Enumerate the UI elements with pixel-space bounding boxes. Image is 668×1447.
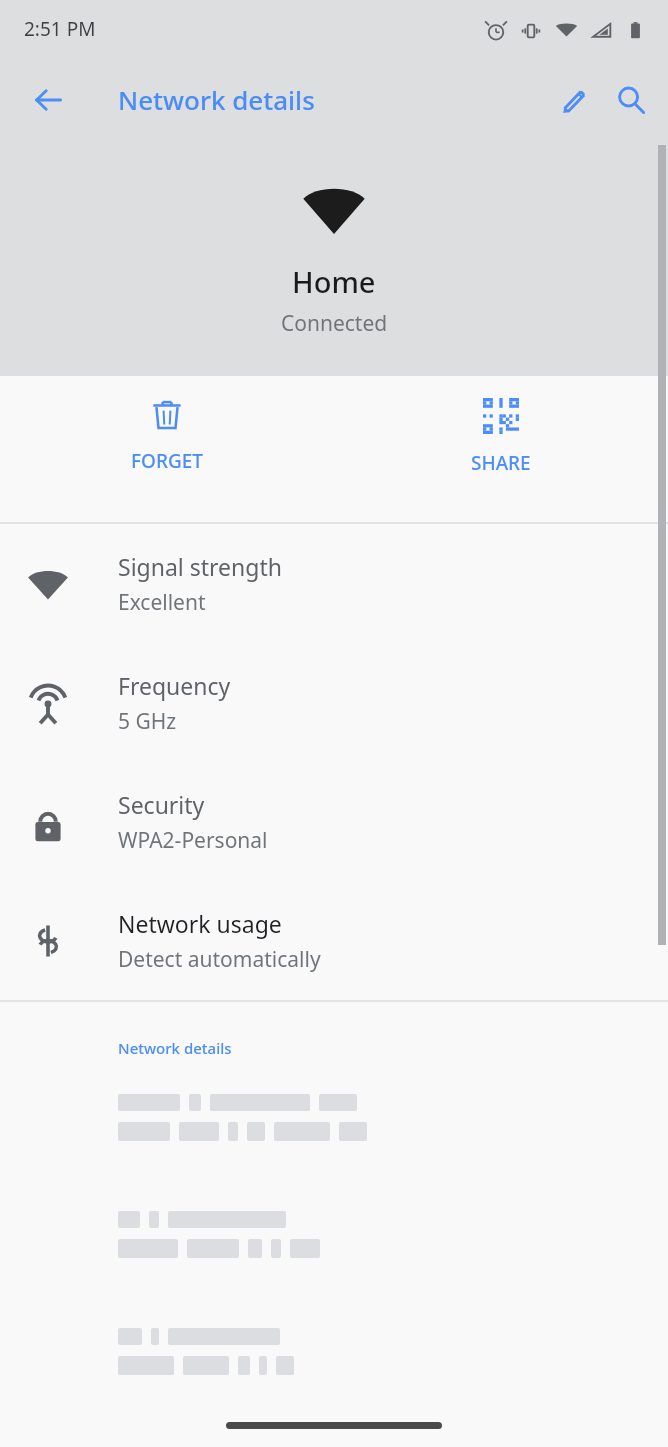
staticText: Detect automatically xyxy=(118,945,321,974)
button[interactable]: Network usage xyxy=(0,881,668,1000)
staticText: 2:51 PM xyxy=(24,16,96,42)
button[interactable]: SHARE xyxy=(334,376,668,492)
button[interactable]: Edit xyxy=(544,71,602,129)
staticText: FORGET xyxy=(131,448,204,474)
staticText: Network details xyxy=(118,1038,232,1058)
staticText: Connected xyxy=(281,309,388,338)
staticText: Home xyxy=(292,262,376,301)
staticText: SHARE xyxy=(471,450,531,476)
staticText: WPA2-Personal xyxy=(118,826,268,855)
button[interactable]: Security xyxy=(0,762,668,881)
button[interactable]: Frequency xyxy=(0,643,668,762)
staticText: Network usage xyxy=(118,908,282,939)
staticText: Signal strength xyxy=(118,551,282,582)
staticText: Frequency xyxy=(118,670,231,701)
staticText: 5 GHz xyxy=(118,707,177,736)
staticText: Excellent xyxy=(118,588,206,617)
staticText: Security xyxy=(118,789,205,820)
button[interactable]: Back xyxy=(20,72,76,128)
staticText: Network details xyxy=(118,82,315,117)
button[interactable]: Search xyxy=(602,71,660,129)
button[interactable]: FORGET xyxy=(0,376,334,490)
button[interactable]: Signal strength xyxy=(0,524,668,643)
